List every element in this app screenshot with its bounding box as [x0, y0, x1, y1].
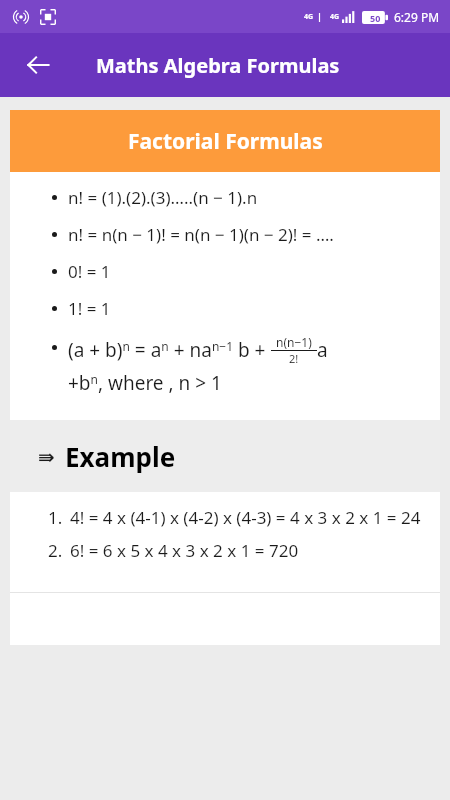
staticText: 2. [48, 539, 63, 562]
button[interactable]: Factorial Formulas [10, 110, 440, 172]
staticText: 1! = 1 [68, 297, 111, 320]
staticText: 4G [304, 12, 314, 22]
staticText: 4! = 4 x (4-1) x (4-2) x (4-3) = 4 x 3 x… [70, 506, 421, 529]
staticText: 50 [370, 12, 381, 24]
staticText: 6:29 PM [394, 9, 440, 25]
staticText: 4G [330, 12, 340, 22]
staticText: 2! [289, 351, 299, 366]
staticText: n(n−1) [276, 334, 312, 350]
staticText: 0! = 1 [68, 260, 111, 283]
staticText: +bn, where , n > 1 [68, 370, 222, 396]
staticText: n! = n(n − 1)! = n(n − 1)(n − 2)! = …. [68, 223, 334, 246]
staticText: 6! = 6 x 5 x 4 x 3 x 2 x 1 = 720 [70, 539, 299, 562]
staticText: 1. [48, 506, 63, 529]
staticText: ⇛ [38, 445, 55, 468]
staticText: n! = (1).(2).(3)…..(n − 1).n [68, 186, 258, 209]
staticText: (a + b)n = an + nan−1 b + [68, 337, 271, 363]
staticText: Example [65, 439, 176, 474]
staticText: Factorial Formulas [128, 127, 323, 156]
button[interactable]: Back [14, 41, 62, 89]
staticText: a [317, 337, 328, 363]
staticText: Maths Algebra Formulas [96, 52, 340, 79]
